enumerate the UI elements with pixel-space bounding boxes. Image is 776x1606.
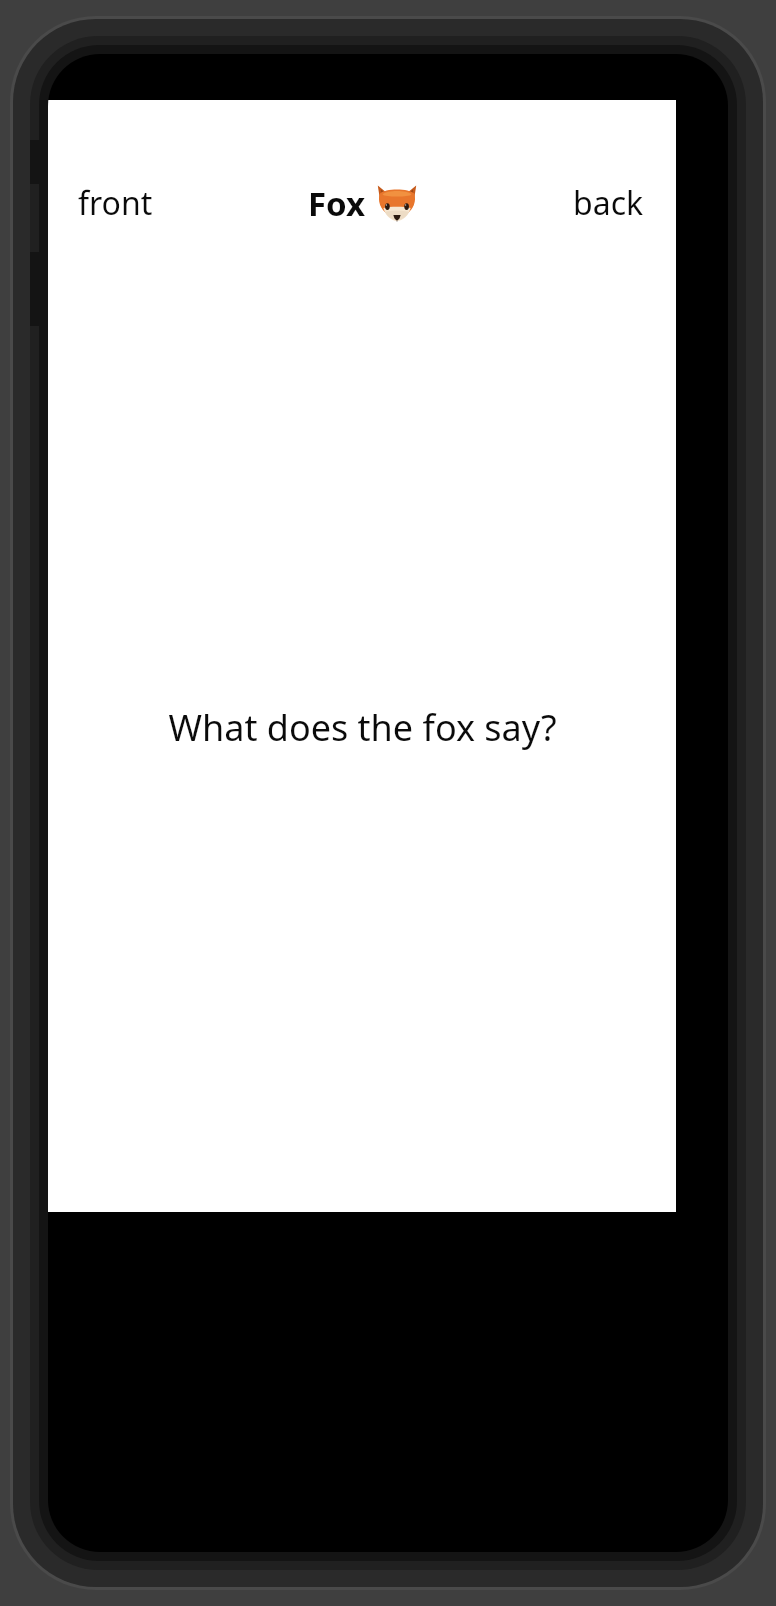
staticText: What does the fox say? — [168, 703, 557, 752]
staticText: back — [573, 181, 644, 225]
other: Fox emoji — [377, 184, 417, 224]
button[interactable]: Fox — [298, 175, 427, 232]
staticText: Fox — [308, 181, 366, 226]
button[interactable]: back — [557, 173, 676, 233]
staticText: front — [78, 181, 153, 225]
button[interactable]: front — [48, 173, 169, 233]
